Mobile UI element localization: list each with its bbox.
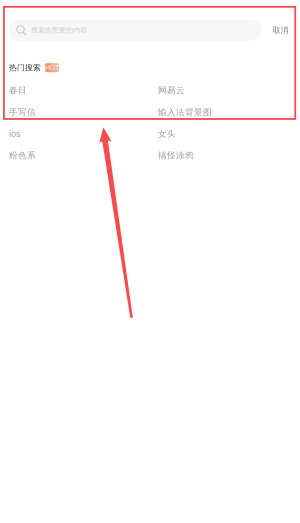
button[interactable]: 搜索你想要的内容 [9, 20, 261, 41]
button[interactable]: ios [9, 123, 158, 145]
button[interactable]: 粉色系 [9, 145, 158, 166]
staticText: 热门搜索 [9, 63, 41, 72]
staticText: 取消 [272, 25, 288, 35]
staticText: 春日 [9, 85, 27, 96]
staticText: 输入法背景图 [158, 107, 212, 117]
staticText: HOT [45, 64, 59, 72]
button[interactable]: 搞怪涂鸦 [158, 145, 300, 166]
staticText: 网易云 [158, 85, 185, 96]
button[interactable]: 网易云 [158, 79, 300, 101]
staticText: 粉色系 [9, 150, 36, 161]
button[interactable]: 手写信 [9, 101, 158, 123]
staticText: 搜索你想要的内容 [31, 26, 87, 35]
button[interactable]: 女头 [158, 123, 300, 145]
staticText: 搞怪涂鸦 [158, 150, 194, 161]
staticText: ios [9, 129, 21, 139]
button[interactable]: 输入法背景图 [158, 101, 300, 123]
button[interactable]: 取消 [261, 20, 300, 41]
staticText: 女头 [158, 128, 176, 139]
staticText: 手写信 [9, 107, 36, 117]
button[interactable]: 春日 [9, 79, 158, 101]
